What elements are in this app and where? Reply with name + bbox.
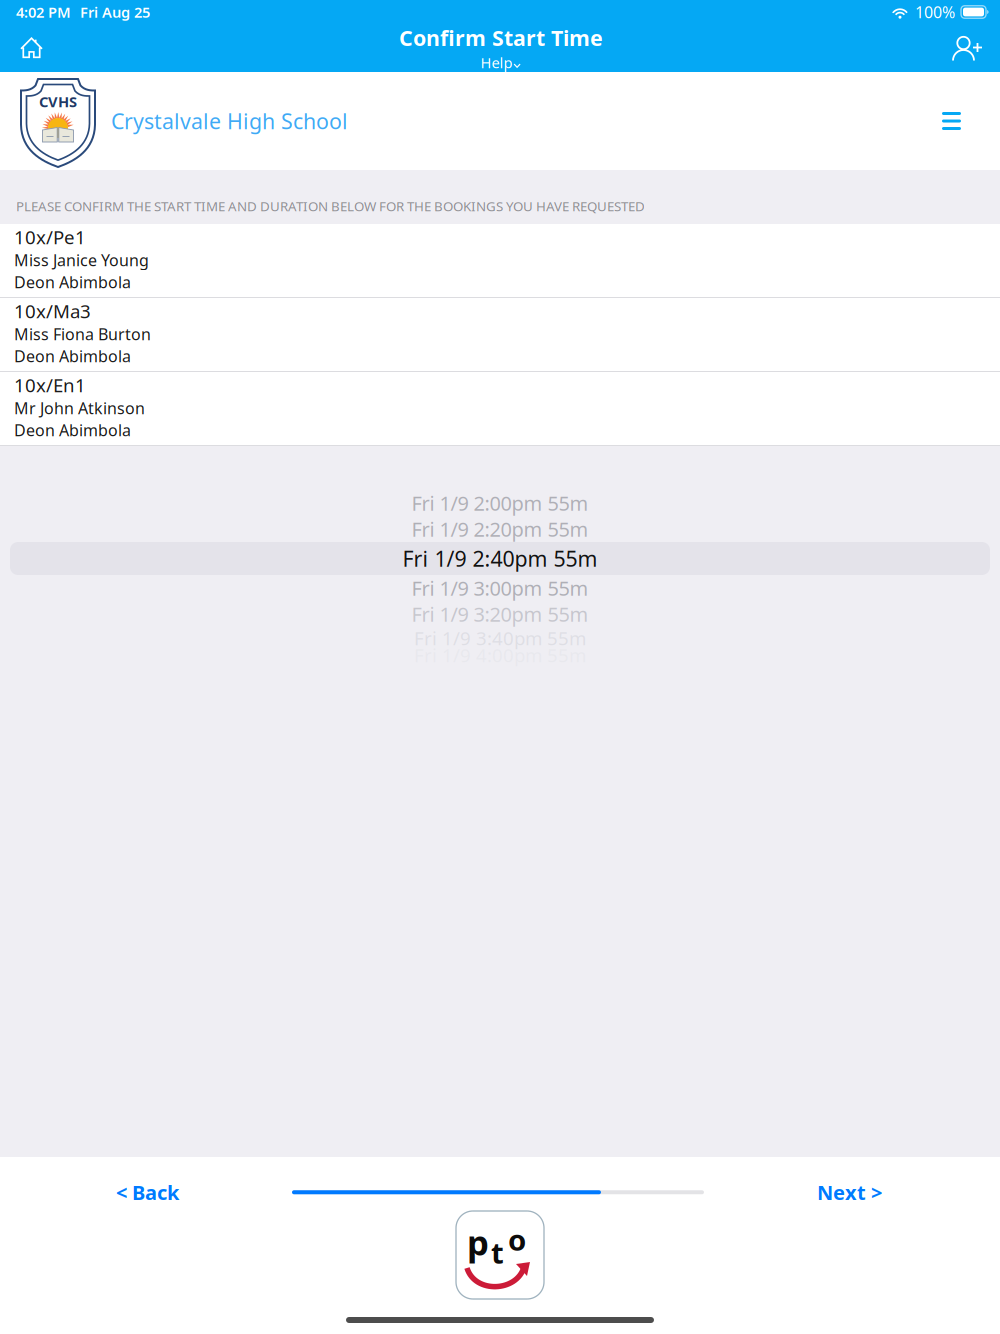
staticText: p (467, 1219, 489, 1265)
staticText: Deon Abimbola (14, 271, 131, 293)
staticText: < Back (116, 1179, 179, 1206)
staticText: Deon Abimbola (14, 419, 131, 441)
staticText: Crystalvale High School (111, 107, 348, 135)
staticText: Mr John Atkinson (14, 397, 145, 419)
staticText: 10x/Ma3 (14, 299, 91, 323)
staticText: o (508, 1220, 526, 1259)
staticText: Deon Abimbola (14, 345, 131, 367)
staticText: Next > (817, 1179, 882, 1206)
button[interactable]: 10x/En1 (0, 372, 1000, 446)
staticText: Help (480, 53, 512, 72)
staticText: Fri 1/9 3:20pm 55m (411, 601, 588, 627)
button[interactable]: Menu (930, 100, 973, 142)
button[interactable]: Add user (947, 26, 988, 69)
staticText: Fri 1/9 2:40pm 55m (402, 544, 597, 573)
staticText: 100% (915, 1, 955, 23)
staticText: Confirm Start Time (399, 24, 603, 52)
staticText: CVHS (39, 92, 77, 111)
staticText: Fri 1/9 2:00pm 55m (411, 490, 588, 516)
staticText: Fri 1/9 3:00pm 55m (411, 575, 588, 601)
button[interactable]: < Back (98, 1168, 197, 1217)
staticText: Fri Aug 25 (80, 2, 150, 22)
staticText: Miss Fiona Burton (14, 323, 151, 345)
button[interactable]: 10x/Pe1 (0, 224, 1000, 298)
staticText: Miss Janice Young (14, 249, 149, 271)
button[interactable]: Next > (799, 1168, 900, 1217)
staticText: Fri 1/9 4:00pm 55m (414, 643, 586, 667)
staticText: t (491, 1233, 504, 1272)
staticText: Fri 1/9 2:20pm 55m (411, 516, 588, 542)
staticText: Fri 1/9 3:40pm 55m (414, 626, 586, 650)
staticText: 10x/En1 (14, 373, 86, 397)
staticText: 10x/Pe1 (14, 225, 86, 249)
button[interactable]: Home (8, 29, 55, 67)
button[interactable]: Help (480, 53, 521, 72)
staticText: 4:02 PM (16, 2, 71, 22)
staticText: PLEASE CONFIRM THE START TIME AND DURATI… (16, 197, 645, 215)
button[interactable]: 10x/Ma3 (0, 298, 1000, 372)
